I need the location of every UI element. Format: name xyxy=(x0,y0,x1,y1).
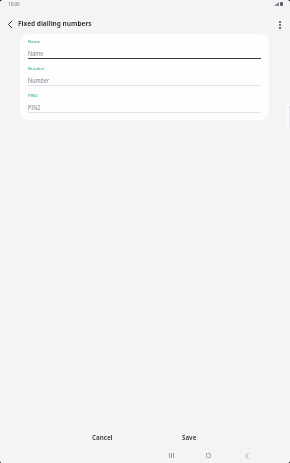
button[interactable]: PIN2 xyxy=(20,88,269,115)
staticText: Name xyxy=(28,39,41,45)
button[interactable]: Recent apps xyxy=(164,448,179,463)
button[interactable]: Save xyxy=(169,429,210,445)
button[interactable]: Home xyxy=(201,448,216,463)
staticText: Name xyxy=(28,49,44,58)
staticText: PIN2 xyxy=(28,93,38,99)
staticText: Fixed dialling numbers xyxy=(18,19,92,28)
staticText: 10:00 xyxy=(8,1,20,7)
staticText: Number xyxy=(28,76,49,85)
staticText: Save xyxy=(182,433,197,441)
button[interactable]: Number xyxy=(20,61,269,88)
staticText: PIN2 xyxy=(28,103,41,112)
button[interactable]: Cancel xyxy=(82,429,123,445)
button[interactable]: Name xyxy=(20,34,269,61)
staticText: Number xyxy=(28,66,45,72)
button[interactable]: Navigate up xyxy=(2,16,18,32)
staticText: Cancel xyxy=(92,433,113,441)
button[interactable]: More options xyxy=(272,17,288,33)
button[interactable]: Back xyxy=(239,448,254,463)
